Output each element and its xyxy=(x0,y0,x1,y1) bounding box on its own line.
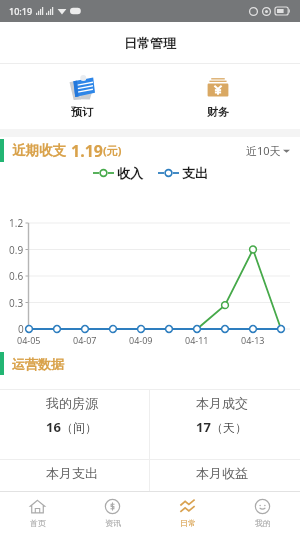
staticText: 04-05 xyxy=(17,334,41,346)
staticText: 1.19 xyxy=(196,488,222,506)
staticText: 0 xyxy=(18,322,24,336)
button[interactable]: 本月收益 xyxy=(150,460,300,529)
staticText: 0.9 xyxy=(9,243,24,257)
staticText: 我的 xyxy=(255,518,271,528)
staticText: 16 xyxy=(46,418,61,436)
staticText: 我的房源 xyxy=(46,395,98,411)
staticText: 17 xyxy=(196,418,211,436)
staticText: 0.3 xyxy=(9,296,24,310)
button[interactable]: 资讯 xyxy=(75,492,150,533)
staticText: 支出 xyxy=(182,165,208,181)
staticText: (元) xyxy=(103,143,122,158)
button[interactable]: 我的 xyxy=(225,492,300,533)
staticText: （元） xyxy=(222,490,258,505)
staticText: 运营数据 xyxy=(12,356,64,372)
button[interactable]: 本月成交 xyxy=(150,390,300,459)
staticText: 财务 xyxy=(207,105,229,119)
staticText: 日常 xyxy=(180,518,196,528)
staticText: 近10天 xyxy=(246,143,281,158)
staticText: 日常管理 xyxy=(124,35,176,51)
staticText: 预订 xyxy=(71,105,93,119)
staticText: 0 xyxy=(46,488,54,506)
button[interactable]: 首页 xyxy=(0,492,75,533)
staticText: 资讯 xyxy=(105,518,121,528)
staticText: （元） xyxy=(54,490,90,505)
button[interactable]: 日常 xyxy=(150,492,225,533)
staticText: 04-11 xyxy=(185,334,209,346)
button[interactable]: 本月支出 xyxy=(0,460,149,529)
staticText: 本月收益 xyxy=(196,465,248,481)
staticText: 首页 xyxy=(30,518,46,528)
button[interactable]: 财务 xyxy=(150,64,286,129)
button[interactable]: 预订 xyxy=(14,64,150,129)
staticText: （天） xyxy=(211,420,247,435)
staticText: 1.2 xyxy=(9,216,24,230)
staticText: 04-09 xyxy=(129,334,153,346)
staticText: 10:19 xyxy=(9,5,33,17)
staticText: 近期收支 xyxy=(12,142,66,159)
button[interactable]: 我的房源 xyxy=(0,390,149,459)
staticText: （间） xyxy=(61,420,97,435)
staticText: 04-07 xyxy=(73,334,97,346)
staticText: 本月成交 xyxy=(196,395,248,411)
button[interactable]: 近10天 xyxy=(246,143,290,158)
staticText: 本月支出 xyxy=(46,465,98,481)
staticText: 收入 xyxy=(117,165,143,181)
staticText: 1.19 xyxy=(71,140,103,162)
staticText: 0.6 xyxy=(9,269,24,283)
staticText: 04-13 xyxy=(241,334,265,346)
